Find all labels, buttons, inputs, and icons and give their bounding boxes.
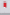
button[interactable]: Photo bbox=[0, 0, 10, 15]
